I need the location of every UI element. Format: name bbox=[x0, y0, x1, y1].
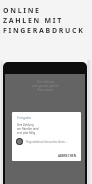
staticText: ABBRECHEN bbox=[58, 154, 77, 158]
other: Fingerabdruck-Sensor bbox=[16, 138, 23, 145]
staticText: Freigabe bbox=[17, 115, 32, 120]
staticText: Ihre Zahlung bbox=[37, 80, 54, 84]
staticText: Ihre Zahlung am Händler wird erst jetzt … bbox=[17, 123, 39, 135]
staticText: ONLINE bbox=[3, 6, 41, 16]
staticText: FINGERABDRUCK bbox=[3, 26, 85, 36]
button[interactable]: ABBRECHEN bbox=[58, 154, 81, 161]
staticText: ZAHLEN MIT bbox=[3, 16, 63, 26]
staticText: wird gerade geprüft bbox=[32, 84, 59, 88]
staticText: Bitte warten bbox=[37, 88, 54, 92]
staticText: Fingerabdruck-Sensor berühren ... bbox=[26, 140, 68, 144]
